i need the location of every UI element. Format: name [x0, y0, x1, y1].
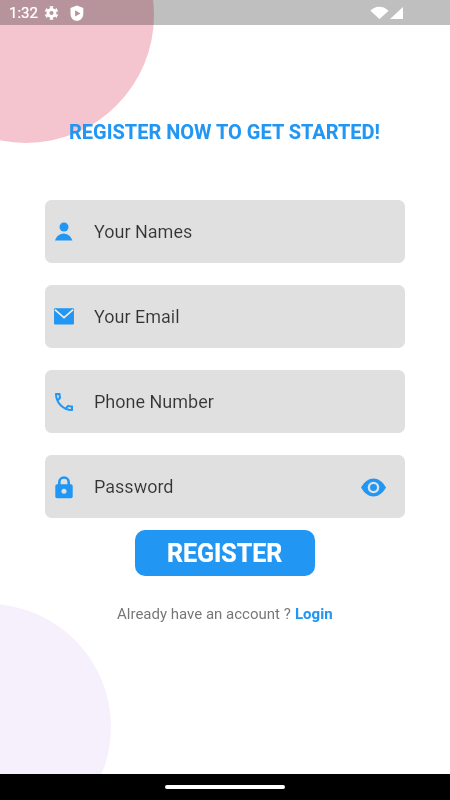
staticText: Login: [295, 605, 333, 623]
button[interactable]: Phone Number: [45, 370, 405, 433]
staticText: Your Names: [94, 221, 193, 242]
staticText: REGISTER: [167, 539, 283, 568]
button[interactable]: Your Names: [45, 200, 405, 263]
staticText: Already have an account ?: [117, 605, 295, 623]
staticText: REGISTER NOW TO GET STARTED!: [69, 120, 381, 143]
button[interactable]: Login: [295, 605, 333, 623]
button[interactable]: REGISTER: [135, 530, 315, 576]
staticText: 1:32: [9, 4, 38, 22]
staticText: Phone Number: [94, 391, 214, 412]
staticText: Your Email: [94, 306, 180, 327]
button[interactable]: Password: [45, 455, 405, 518]
staticText: Password: [94, 476, 174, 497]
button[interactable]: Your Email: [45, 285, 405, 348]
button[interactable]: Show password: [352, 466, 394, 508]
